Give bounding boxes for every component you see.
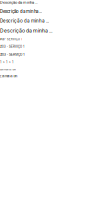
staticText: Estimativa 13m (0, 75, 17, 78)
staticText: Descrição da minha … (0, 18, 49, 24)
staticText: Descrição da minha … (0, 0, 38, 5)
staticText: Descrição da minha … (0, 28, 53, 34)
staticText: 1 > 1 > 1 (0, 60, 14, 64)
staticText: #03 - SERVIÇO 1 (0, 45, 25, 48)
staticText: #03 - SERVIÇO 1 (0, 38, 22, 41)
staticText: Estimativa 13m (0, 68, 16, 71)
staticText: Descrição da minha … (0, 9, 42, 14)
staticText: #03 - SERVIÇO 1 (0, 52, 25, 56)
